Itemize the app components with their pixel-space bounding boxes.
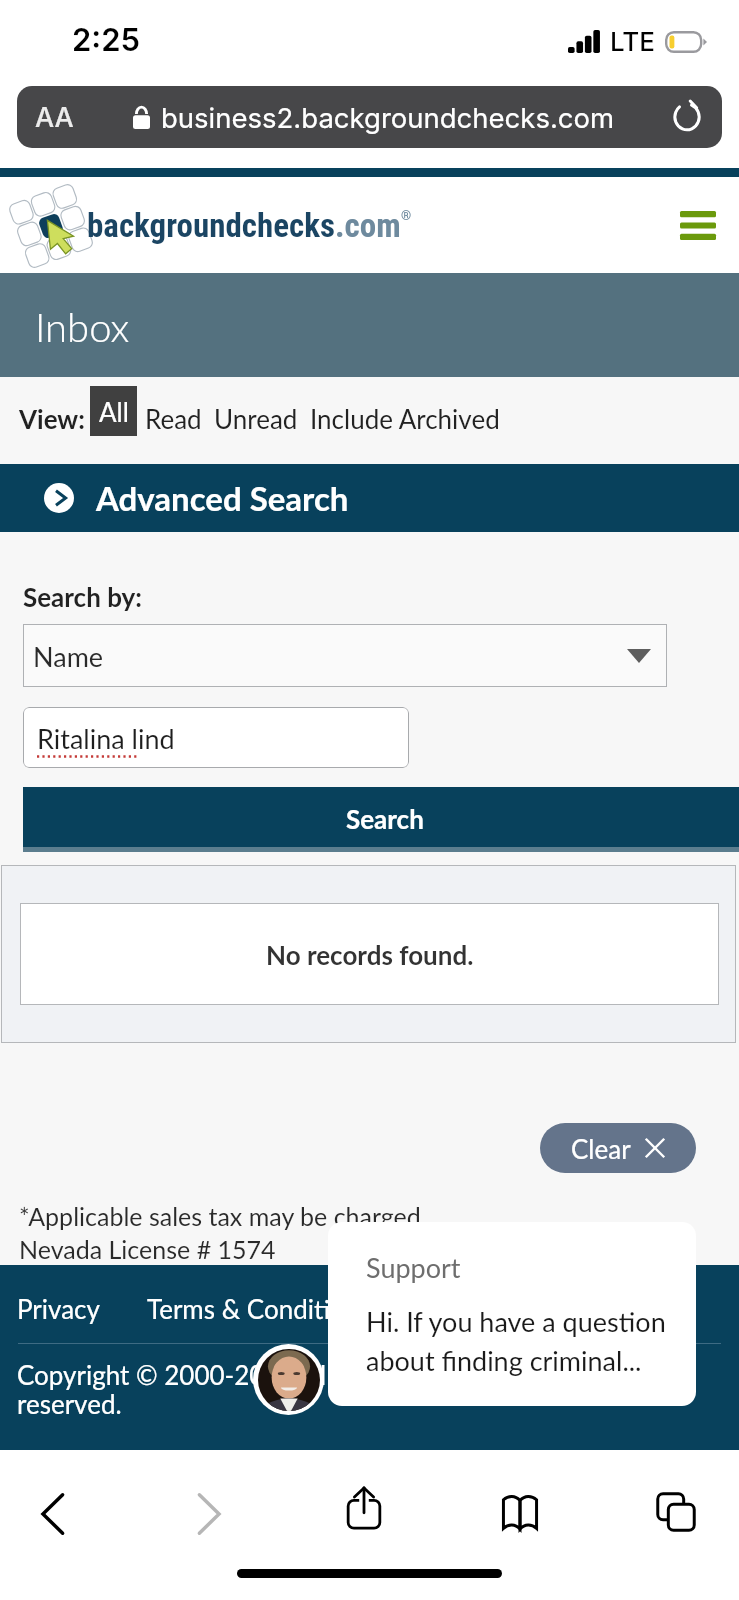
- staticText: reserved.: [17, 1388, 122, 1419]
- button[interactable]: Terms & Conditions: [147, 1293, 371, 1324]
- button[interactable]: Read: [145, 403, 202, 434]
- button[interactable]: Tabs: [640, 1476, 712, 1548]
- button[interactable]: Support agent: [253, 1344, 324, 1415]
- button[interactable]: Search: [23, 787, 739, 847]
- staticText: Name: [33, 640, 104, 672]
- button[interactable]: Unread: [214, 403, 298, 434]
- staticText: Nevada License # 1574: [19, 1234, 276, 1264]
- staticText: Unread: [214, 403, 298, 434]
- staticText: business2.backgroundchecks.com: [161, 101, 615, 134]
- staticText: Hi. If you have a question: [366, 1305, 666, 1337]
- staticText: Terms & Conditions: [147, 1293, 371, 1324]
- staticText: Clear: [571, 1133, 631, 1164]
- button[interactable]: Privacy: [17, 1293, 100, 1324]
- staticText: ®: [401, 208, 412, 223]
- button[interactable]: Advanced Search: [0, 464, 739, 532]
- button[interactable]: Ritalina lind: [23, 707, 409, 768]
- button[interactable]: Name: [23, 624, 667, 687]
- button[interactable]: Include Archived: [310, 403, 500, 434]
- staticText: Copyright © 2000-2025, all rights: [17, 1359, 404, 1390]
- button[interactable]: Share: [328, 1472, 400, 1544]
- staticText: Advanced Search: [96, 478, 349, 518]
- button[interactable]: Menu: [673, 200, 723, 250]
- button[interactable]: Reload: [668, 98, 706, 136]
- staticText: All: [99, 396, 129, 427]
- button[interactable]: Support: [328, 1222, 696, 1406]
- staticText: Include Archived: [310, 403, 500, 434]
- staticText: View:: [19, 403, 85, 434]
- staticText: Privacy: [17, 1293, 100, 1324]
- staticText: LTE: [610, 26, 655, 57]
- staticText: *Applicable sales tax may be charged: [19, 1201, 421, 1231]
- staticText: No records found.: [266, 939, 474, 970]
- staticText: Search: [346, 803, 424, 834]
- staticText: AA: [35, 101, 74, 134]
- staticText: backgroundchecks: [87, 206, 335, 245]
- staticText: 2:25: [72, 21, 141, 59]
- staticText: Support: [366, 1251, 461, 1283]
- button[interactable]: AA: [17, 86, 722, 148]
- button[interactable]: All: [90, 386, 137, 436]
- button[interactable]: Forward: [172, 1478, 244, 1550]
- staticText: Inbox: [35, 303, 130, 351]
- button[interactable]: Bookmarks: [484, 1476, 556, 1548]
- staticText: Read: [145, 403, 202, 434]
- staticText: about finding criminal...: [366, 1344, 642, 1376]
- staticText: .com: [335, 206, 401, 245]
- button[interactable]: Clear: [540, 1123, 696, 1173]
- button[interactable]: Back: [18, 1478, 90, 1550]
- staticText: Ritalina lind: [37, 722, 175, 754]
- staticText: Search by:: [23, 581, 142, 612]
